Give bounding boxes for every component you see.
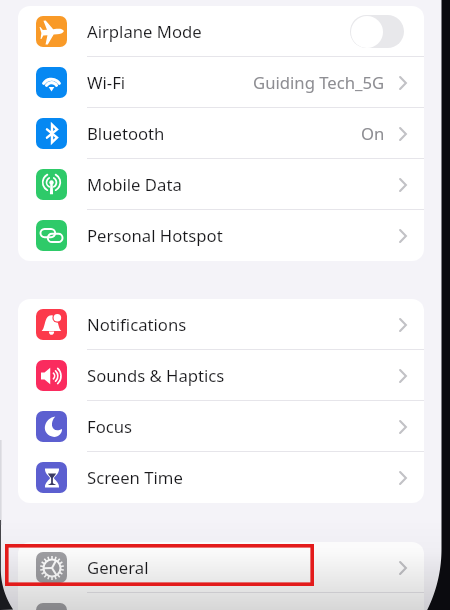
button[interactable]: Control Centre (18, 593, 424, 610)
staticText: On (361, 122, 385, 145)
button[interactable]: Airplane Mode toggle, off (350, 15, 404, 48)
button[interactable]: Personal Hotspot (18, 210, 424, 261)
button[interactable]: Notifications (18, 299, 424, 350)
staticText: Airplane Mode (87, 20, 202, 43)
staticText: Mobile Data (87, 173, 182, 196)
button[interactable]: Sounds & Haptics (18, 350, 424, 401)
button[interactable]: Bluetooth (18, 108, 424, 159)
staticText: Bluetooth (87, 122, 165, 145)
staticText: General (87, 556, 149, 579)
staticText: Screen Time (87, 466, 183, 489)
staticText: Guiding Tech_5G (253, 71, 385, 94)
staticText: Notifications (87, 313, 187, 336)
button[interactable]: Mobile Data (18, 159, 424, 210)
button[interactable]: Airplane Mode (18, 6, 424, 57)
staticText: Sounds & Haptics (87, 364, 225, 387)
button[interactable]: General (18, 542, 424, 593)
staticText: Focus (87, 415, 133, 438)
button[interactable]: Focus (18, 401, 424, 452)
staticText: Personal Hotspot (87, 224, 223, 247)
button[interactable]: Wi-Fi (18, 57, 424, 108)
staticText: Wi-Fi (87, 71, 126, 94)
button[interactable]: Screen Time (18, 452, 424, 503)
